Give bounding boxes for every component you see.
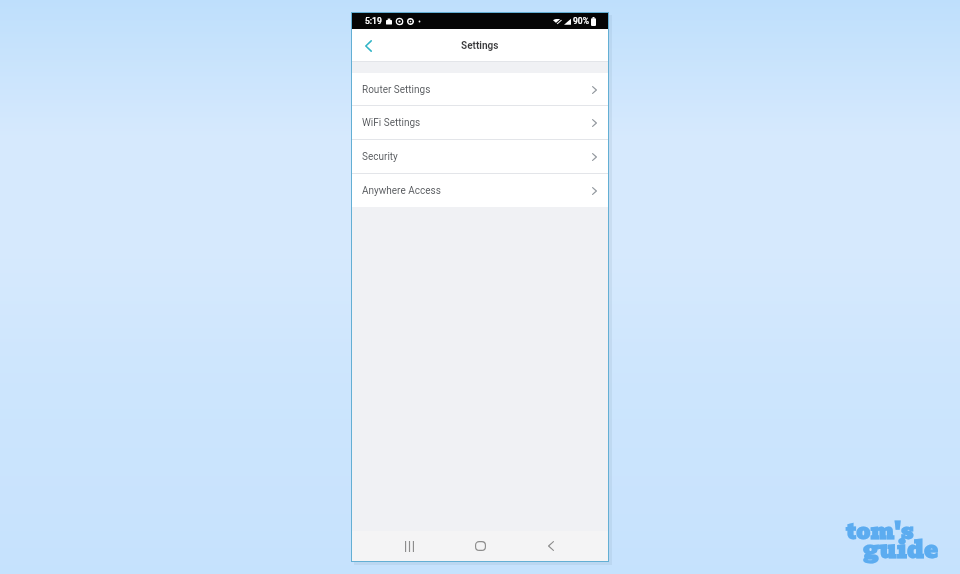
button[interactable]: Back — [352, 30, 385, 62]
staticText: tom's — [846, 514, 914, 549]
staticText: guide — [863, 531, 939, 569]
staticText: 5:19 — [365, 16, 382, 26]
button[interactable]: Router Settings — [352, 73, 608, 106]
staticText: WiFi Settings — [362, 117, 421, 129]
button[interactable]: WiFi Settings — [352, 106, 608, 140]
staticText: Router Settings — [362, 84, 431, 96]
staticText: Anywhere Access — [362, 185, 441, 197]
button[interactable]: Recent apps — [377, 531, 441, 561]
button[interactable]: Back — [519, 531, 583, 561]
staticText: 90% — [573, 16, 589, 26]
staticText: Settings — [461, 40, 499, 52]
button[interactable]: Security — [352, 140, 608, 174]
button[interactable]: Home — [448, 531, 512, 561]
button[interactable]: Anywhere Access — [352, 174, 608, 207]
staticText: Security — [362, 151, 398, 163]
